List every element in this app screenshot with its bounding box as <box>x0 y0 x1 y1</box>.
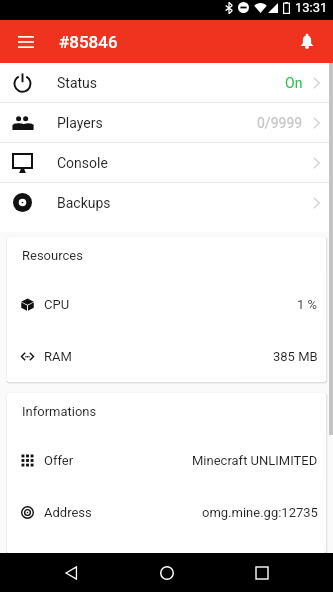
button[interactable]: Menu <box>0 20 51 63</box>
button[interactable]: Offer <box>7 434 326 486</box>
staticText: RAM <box>44 349 72 364</box>
staticText: 13:31 <box>295 0 328 15</box>
button[interactable]: Home <box>143 553 191 592</box>
staticText: Resources <box>22 248 83 263</box>
button[interactable]: RAM <box>7 330 326 382</box>
button[interactable]: Address <box>7 486 326 538</box>
staticText: Backups <box>57 195 111 211</box>
button[interactable]: Notifications <box>281 20 333 63</box>
staticText: Players <box>57 115 103 131</box>
staticText: Address <box>44 505 92 520</box>
staticText: CPU <box>44 297 70 312</box>
button[interactable]: Back <box>47 553 95 592</box>
staticText: 1 % <box>297 297 318 312</box>
button[interactable]: CPU <box>7 278 326 330</box>
staticText: omg.mine.gg:12735 <box>202 505 318 520</box>
staticText: 0/9999 <box>257 115 303 131</box>
button[interactable]: Recents <box>238 553 286 592</box>
staticText: Informations <box>22 404 97 419</box>
button[interactable]: Backups <box>0 183 333 222</box>
button[interactable]: Console <box>0 143 333 182</box>
staticText: Offer <box>44 453 74 468</box>
staticText: 385 MB <box>273 349 318 364</box>
staticText: Status <box>57 75 98 91</box>
button[interactable]: Players <box>0 103 333 142</box>
staticText: Console <box>57 155 108 171</box>
staticText: Minecraft UNLIMITED <box>192 453 318 468</box>
staticText: On <box>285 75 303 91</box>
staticText: #85846 <box>59 32 118 52</box>
button[interactable]: Status <box>0 63 333 102</box>
